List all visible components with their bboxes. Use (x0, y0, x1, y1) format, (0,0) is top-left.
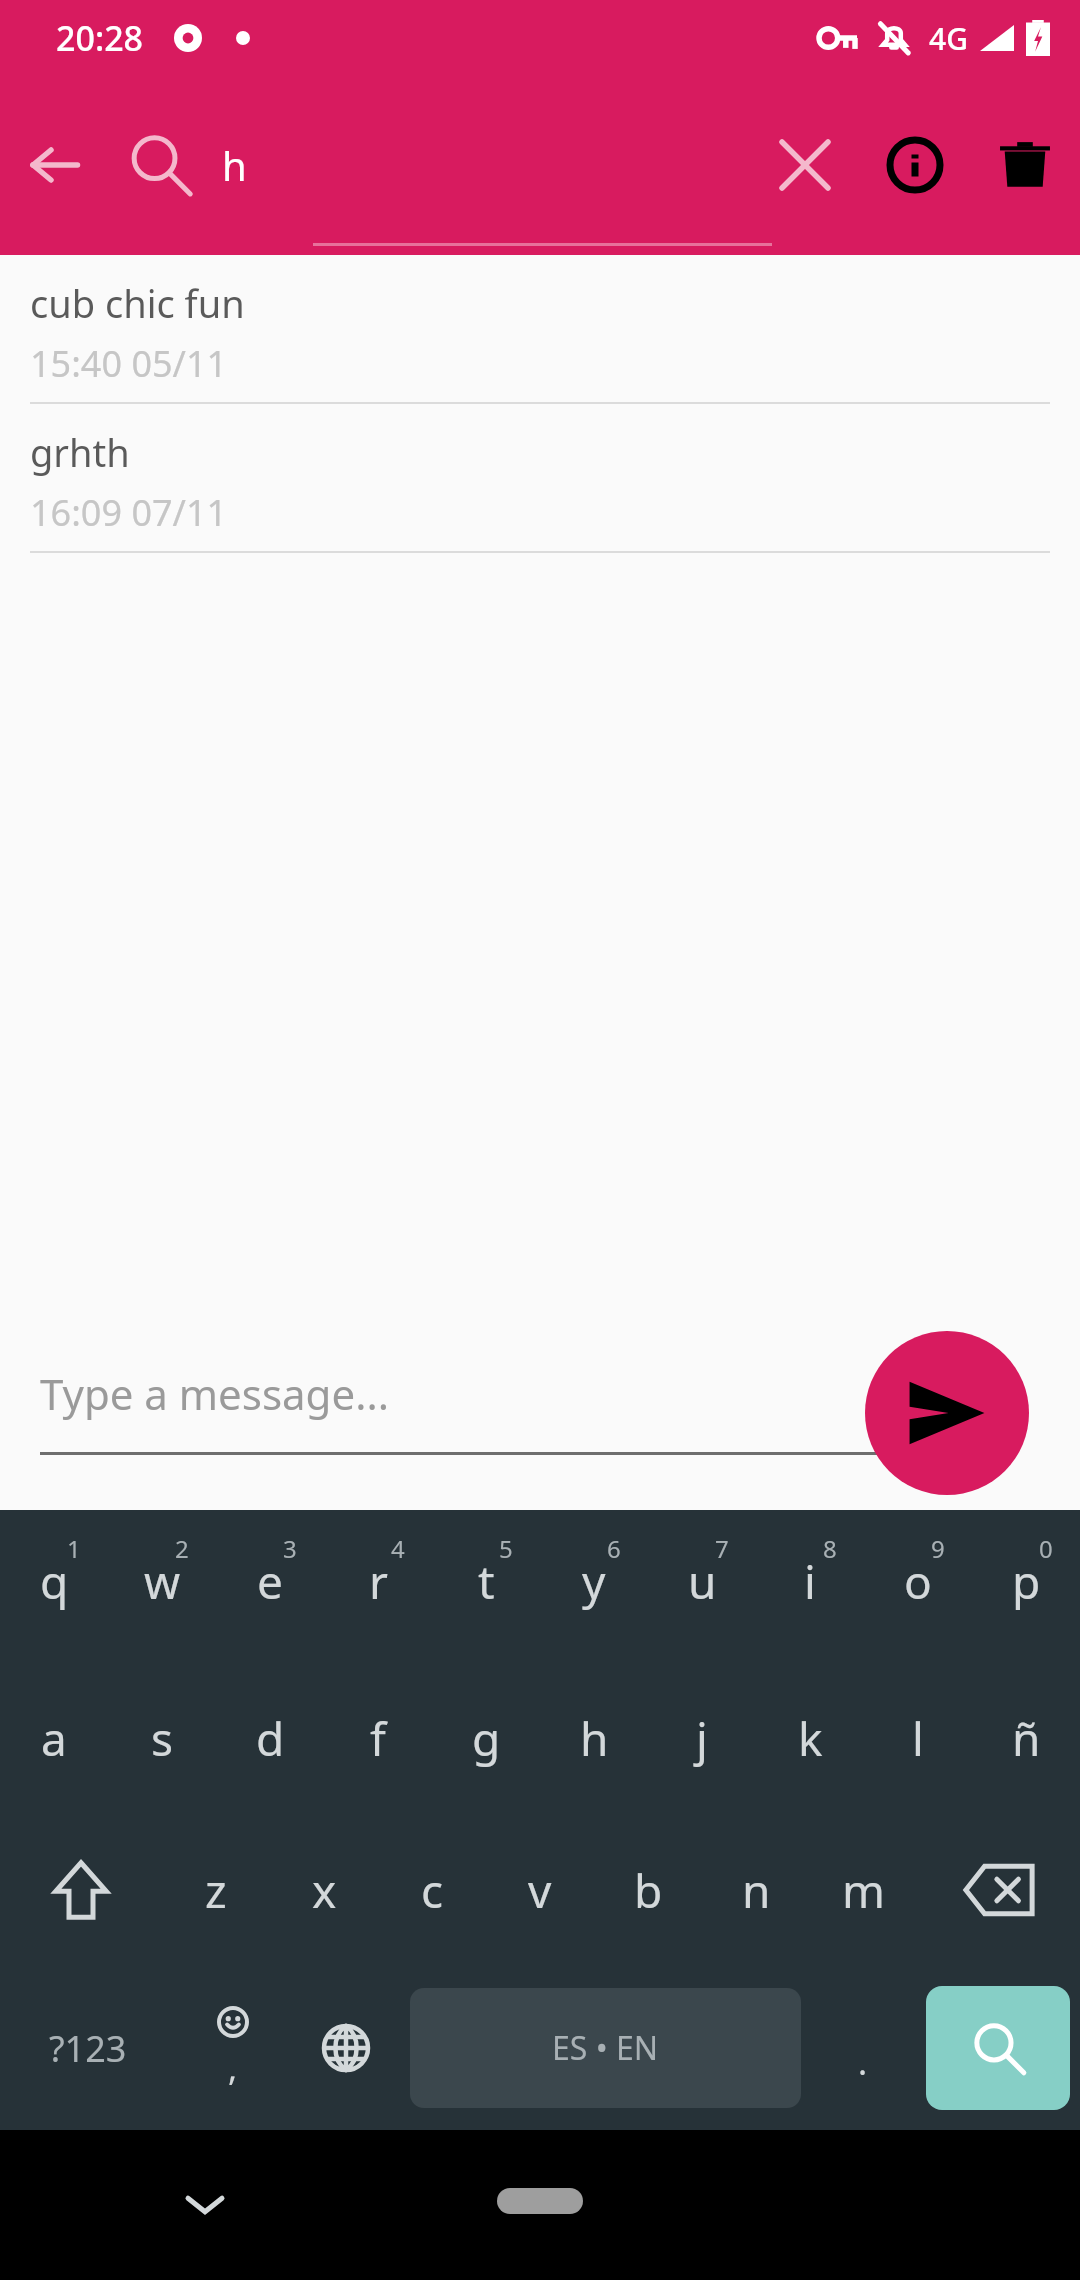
staticText: x (312, 1859, 337, 1922)
staticText: 15:40 05/11 (30, 339, 228, 388)
button[interactable]: Type a message... (40, 1338, 880, 1448)
staticText: k (798, 1707, 823, 1770)
button[interactable]: Search (110, 115, 210, 215)
button[interactable]: Home (497, 2188, 583, 2214)
staticText: 16:09 07/11 (30, 488, 228, 537)
button[interactable]: ñ (972, 1662, 1080, 1814)
button[interactable]: v (486, 1814, 594, 1966)
button[interactable]: 3 (216, 1510, 324, 1662)
staticText: 9 (931, 1532, 945, 1565)
staticText: o (904, 1550, 932, 1613)
button[interactable]: h (540, 1662, 648, 1814)
button[interactable]: . (809, 1966, 916, 2130)
staticText: u (688, 1550, 717, 1613)
button[interactable]: Shift (0, 1814, 162, 1966)
staticText: g (472, 1707, 501, 1770)
staticText: r (369, 1550, 388, 1613)
button[interactable]: Change language (289, 1966, 402, 2130)
button[interactable]: a (0, 1662, 108, 1814)
staticText: ES • EN (552, 2026, 659, 2070)
staticText: w (144, 1550, 181, 1613)
staticText: 3 (283, 1532, 297, 1565)
staticText: 6 (607, 1532, 621, 1565)
staticText: y (582, 1550, 606, 1613)
button[interactable]: Search (926, 1986, 1070, 2110)
button[interactable]: l (864, 1662, 972, 1814)
staticText: 4G (929, 18, 968, 59)
button[interactable]: 1 (0, 1510, 108, 1662)
button[interactable]: j (648, 1662, 756, 1814)
button[interactable]: n (702, 1814, 810, 1966)
staticText: p (1012, 1550, 1041, 1613)
staticText: grhth (30, 426, 130, 478)
staticText: m (842, 1859, 886, 1922)
button[interactable]: 7 (648, 1510, 756, 1662)
button[interactable]: 5 (432, 1510, 540, 1662)
staticText: 4 (391, 1532, 405, 1565)
button[interactable]: 4 (324, 1510, 432, 1662)
button[interactable]: Emoji (176, 1966, 289, 2130)
staticText: f (370, 1707, 386, 1770)
staticText: . (858, 2039, 868, 2085)
button[interactable]: 2 (108, 1510, 216, 1662)
button[interactable]: cub chic fun (0, 255, 1080, 404)
button[interactable]: b (594, 1814, 702, 1966)
button[interactable]: d (216, 1662, 324, 1814)
button[interactable]: 0 (972, 1510, 1080, 1662)
staticText: 20:28 (56, 15, 144, 61)
button[interactable]: Send (865, 1331, 1029, 1495)
button[interactable]: m (810, 1814, 918, 1966)
staticText: 0 (1039, 1532, 1053, 1565)
button[interactable]: ES • EN (410, 1988, 801, 2108)
button[interactable]: Backspace (918, 1814, 1080, 1966)
button[interactable]: ?123 (0, 1966, 176, 2130)
staticText: cub chic fun (30, 277, 245, 329)
staticText: ?123 (49, 2024, 127, 2073)
button[interactable]: k (756, 1662, 864, 1814)
staticText: j (696, 1707, 708, 1770)
staticText: t (478, 1550, 495, 1613)
staticText: 5 (499, 1532, 513, 1565)
staticText: , (228, 2045, 238, 2091)
staticText: s (151, 1707, 174, 1770)
button[interactable]: z (162, 1814, 270, 1966)
button[interactable]: grhth (0, 404, 1080, 553)
button[interactable]: 9 (864, 1510, 972, 1662)
staticText: l (912, 1707, 924, 1770)
button[interactable]: c (378, 1814, 486, 1966)
button[interactable]: h (210, 110, 750, 220)
button[interactable]: Back (0, 110, 110, 220)
button[interactable]: g (432, 1662, 540, 1814)
staticText: c (421, 1859, 444, 1922)
staticText: n (742, 1859, 771, 1922)
staticText: b (634, 1859, 663, 1922)
staticText: z (205, 1859, 227, 1922)
staticText: Type a message... (40, 1365, 389, 1422)
staticText: v (528, 1859, 552, 1922)
staticText: 7 (715, 1532, 729, 1565)
button[interactable]: s (108, 1662, 216, 1814)
button[interactable]: f (324, 1662, 432, 1814)
staticText: h (580, 1707, 609, 1770)
staticText: a (41, 1707, 67, 1770)
staticText: 1 (67, 1532, 81, 1565)
staticText: i (804, 1550, 816, 1613)
staticText: e (257, 1550, 283, 1613)
button[interactable]: 6 (540, 1510, 648, 1662)
staticText: 2 (175, 1532, 189, 1565)
staticText: 8 (823, 1532, 837, 1565)
staticText: d (256, 1707, 285, 1770)
button[interactable]: Hide keyboard (160, 2160, 250, 2250)
staticText: ñ (1012, 1707, 1041, 1770)
button[interactable]: Clear (750, 110, 860, 220)
button[interactable]: Info (860, 110, 970, 220)
staticText: h (222, 138, 247, 192)
button[interactable]: Delete (970, 110, 1080, 220)
button[interactable]: 8 (756, 1510, 864, 1662)
staticText: q (40, 1550, 69, 1613)
button[interactable]: x (270, 1814, 378, 1966)
